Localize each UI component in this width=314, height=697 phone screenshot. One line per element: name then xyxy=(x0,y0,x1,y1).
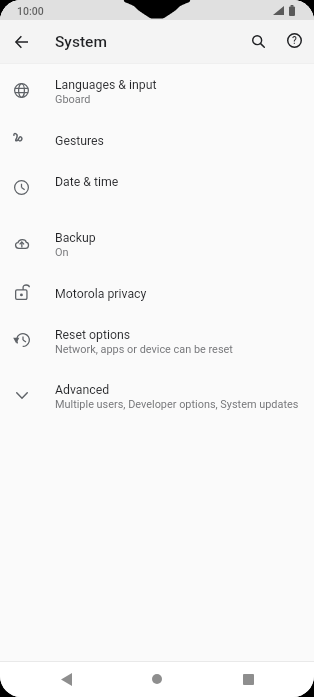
staticText: Gboard xyxy=(55,93,91,106)
button[interactable]: Reset options xyxy=(0,315,314,370)
button[interactable]: Gestures xyxy=(0,122,314,163)
button[interactable]: Help xyxy=(275,21,314,60)
button[interactable]: Back xyxy=(2,22,41,61)
button[interactable]: Search xyxy=(239,22,278,61)
button[interactable]: Date & time xyxy=(0,163,314,204)
button[interactable]: Home xyxy=(141,663,173,695)
button[interactable]: Recents xyxy=(232,663,264,695)
button[interactable]: Languages & input xyxy=(0,65,314,120)
button[interactable]: Advanced xyxy=(0,370,314,425)
staticText: Network, apps or device can be reset xyxy=(55,343,233,356)
button[interactable]: Motorola privacy xyxy=(0,275,314,316)
staticText: Languages & input xyxy=(55,78,157,92)
staticText: Backup xyxy=(55,231,96,245)
button[interactable]: Backup xyxy=(0,218,314,273)
staticText: ? xyxy=(292,35,297,47)
staticText: 10:00 xyxy=(17,5,44,17)
staticText: Motorola privacy xyxy=(55,287,147,301)
staticText: System xyxy=(55,33,107,51)
staticText: Advanced xyxy=(55,383,110,397)
staticText: Gestures xyxy=(55,134,104,148)
button[interactable]: Back xyxy=(50,663,82,695)
staticText: Date & time xyxy=(55,175,119,189)
staticText: Multiple users, Developer options, Syste… xyxy=(55,398,299,411)
staticText: Reset options xyxy=(55,328,131,342)
staticText: On xyxy=(55,246,69,259)
